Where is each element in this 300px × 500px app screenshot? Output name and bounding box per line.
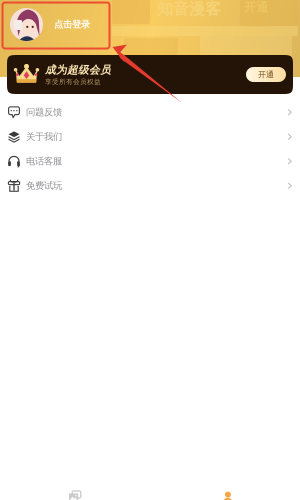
staticText: 问题反馈	[26, 106, 62, 118]
button[interactable]: 书架	[0, 491, 150, 500]
button[interactable]: 问题反馈	[0, 100, 300, 124]
button[interactable]: 电话客服	[0, 149, 300, 173]
button[interactable]: 点击登录	[0, 8, 108, 41]
staticText: 点击登录	[54, 19, 90, 30]
staticText: 电话客服	[26, 155, 62, 167]
staticText: 享受所有会员权益	[45, 78, 101, 86]
staticText: 关于我们	[26, 131, 62, 142]
button[interactable]: 免费试玩	[0, 173, 300, 198]
button[interactable]: 我的	[150, 491, 300, 500]
staticText: 免费试玩	[26, 180, 62, 191]
staticText: 知音漫客	[157, 0, 221, 19]
staticText: 开通	[244, 0, 268, 15]
button[interactable]: 成为超级会员	[7, 55, 293, 94]
staticText: 开通	[258, 70, 274, 79]
staticText: 成为超级会员	[45, 63, 111, 77]
button[interactable]: 关于我们	[0, 124, 300, 149]
